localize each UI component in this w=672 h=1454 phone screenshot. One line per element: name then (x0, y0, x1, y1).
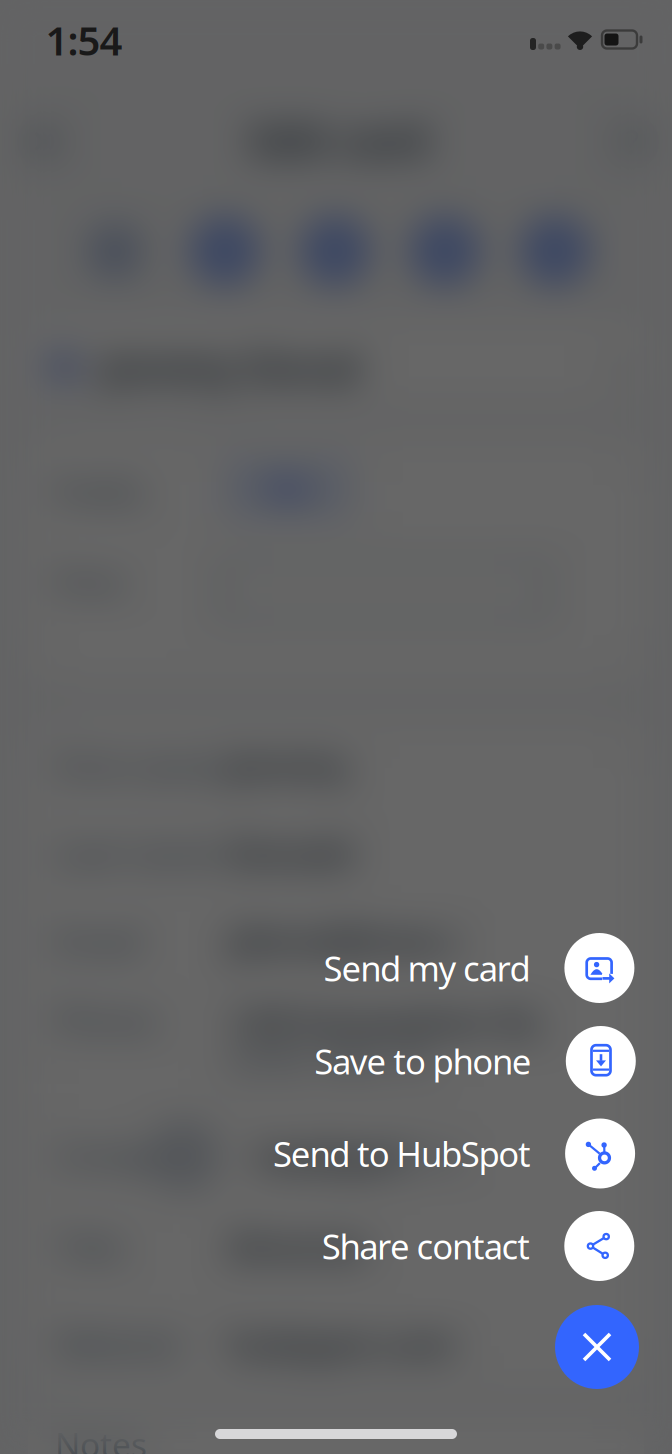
staticText: Jeremy Donal (101, 340, 360, 393)
staticText: 128 Innovation Dr, (228, 998, 543, 1046)
button[interactable]: Share contact (322, 1211, 634, 1281)
staticText: hubspot.com (228, 1320, 455, 1368)
staticText: Save to phone (314, 1038, 532, 1084)
staticText: Edit card (250, 113, 427, 167)
staticText: HubSpot (255, 1133, 405, 1181)
button[interactable]: Save to phone (314, 1026, 636, 1096)
staticText: 1:54 (45, 13, 122, 66)
staticText: · Softw (358, 1135, 463, 1179)
staticText: Send to HubSpot (273, 1130, 531, 1176)
staticText: jdonal@mai.c (228, 916, 461, 964)
button[interactable] (555, 1305, 639, 1389)
staticText: Share contact (322, 1223, 530, 1269)
staticText: Notes (55, 1422, 147, 1454)
button[interactable]: Send to HubSpot (273, 1118, 635, 1188)
staticText: Suite 300, FL (228, 1035, 433, 1081)
button[interactable]: Send my card (324, 933, 634, 1003)
staticText: Send my card (324, 945, 530, 991)
staticText: Company (55, 1133, 205, 1177)
staticText: Director (228, 1223, 369, 1271)
